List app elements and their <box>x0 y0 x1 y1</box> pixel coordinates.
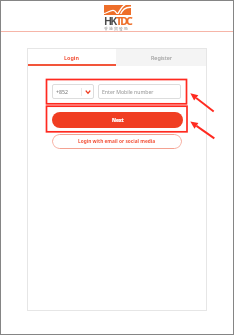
staticText: Login with email or social media <box>78 138 156 145</box>
button[interactable]: Enter Mobile number <box>98 84 181 99</box>
staticText: +852 <box>56 88 69 95</box>
staticText: Enter Mobile number <box>102 88 154 95</box>
staticText: HK <box>104 14 116 28</box>
button[interactable]: Register <box>116 48 207 66</box>
button[interactable]: Next <box>52 112 183 128</box>
staticText: 香港貿發局 <box>104 26 129 31</box>
button[interactable]: Login with email or social media <box>52 134 182 149</box>
staticText: Register <box>151 54 172 61</box>
button[interactable]: Select country code <box>52 84 94 99</box>
button[interactable]: Login <box>27 48 116 66</box>
staticText: Login <box>64 54 79 61</box>
staticText: Next <box>112 117 124 124</box>
staticText: TDC <box>116 14 131 28</box>
